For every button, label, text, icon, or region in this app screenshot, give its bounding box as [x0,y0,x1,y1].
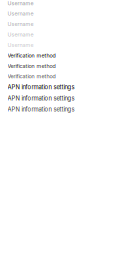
staticText: APN information settings [7,106,74,113]
staticText: Verification method [7,63,55,69]
staticText: Verification method [7,73,55,80]
staticText: Username [7,10,33,17]
staticText: APN information settings [7,95,74,102]
staticText: Username [7,21,33,27]
staticText: Username [7,0,33,6]
staticText: Verification method [7,52,55,59]
staticText: Username [7,42,33,48]
staticText: APN information settings [7,84,74,91]
staticText: Username [7,31,33,38]
